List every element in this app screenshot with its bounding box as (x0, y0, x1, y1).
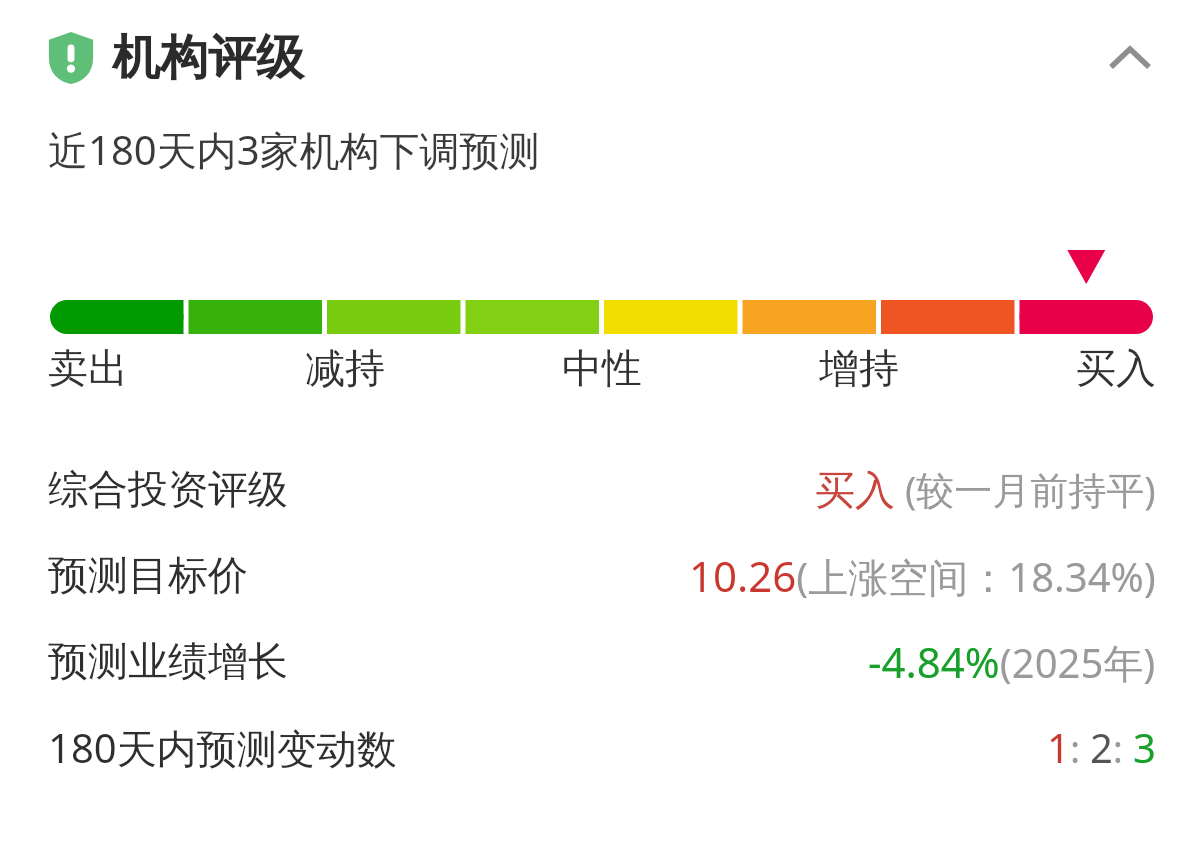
button[interactable]: Collapse section (1098, 26, 1162, 90)
button[interactable]: 机构评级 (0, 0, 1200, 116)
button[interactable]: 180天内预测变动数 (0, 704, 1200, 790)
button[interactable]: 综合投资评级 (0, 446, 1200, 532)
staticText: 预测目标价 (48, 550, 248, 600)
staticText: 机构评级 (112, 28, 304, 88)
staticText: 减持 (305, 343, 385, 393)
button[interactable]: 预测目标价 (0, 532, 1200, 618)
staticText: 近180天内3家机构下调预测 (48, 122, 540, 177)
staticText: 增持 (819, 343, 899, 393)
staticText: 卖出 (48, 343, 128, 393)
staticText: 180天内预测变动数 (48, 720, 397, 775)
staticText: 10.26(上涨空间：18.34%) (689, 547, 1156, 604)
staticText: 中性 (562, 343, 642, 393)
button[interactable]: 预测业绩增长 (0, 618, 1200, 704)
staticText: 1: 2: 3 (1047, 720, 1156, 774)
staticText: 买入 (1076, 343, 1156, 393)
staticText: 综合投资评级 (48, 464, 288, 514)
staticText: -4.84%(2025年) (868, 633, 1156, 690)
staticText: 预测业绩增长 (48, 636, 288, 686)
staticText: 买入 (较一月前持平) (815, 463, 1156, 515)
